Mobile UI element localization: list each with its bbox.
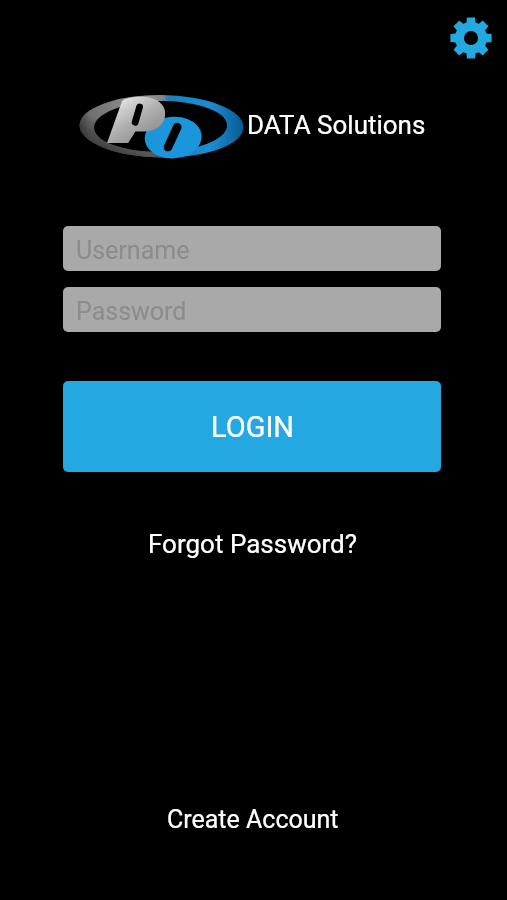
staticText: DATA Solutions: [247, 110, 426, 140]
button[interactable]: Password: [63, 287, 441, 332]
staticText: Password: [76, 297, 187, 326]
staticText: Username: [76, 236, 190, 265]
button[interactable]: Settings: [442, 9, 499, 66]
staticText: Forgot Password?: [148, 529, 358, 559]
button[interactable]: Forgot Password?: [133, 521, 373, 566]
staticText: Create Account: [167, 805, 339, 834]
staticText: LOGIN: [211, 410, 294, 444]
button[interactable]: Create Account: [148, 797, 358, 842]
button[interactable]: Username: [63, 226, 441, 271]
button[interactable]: LOGIN: [63, 381, 441, 472]
